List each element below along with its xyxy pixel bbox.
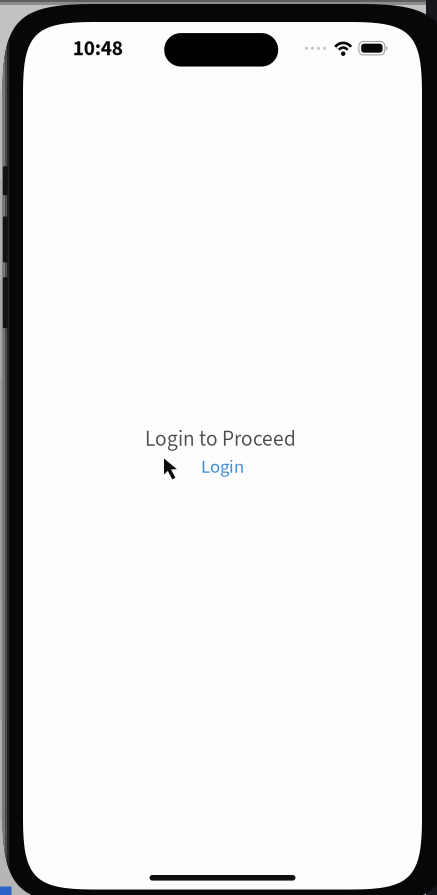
staticText: 10:48 xyxy=(73,33,123,64)
staticText: Login to Proceed xyxy=(145,424,296,454)
button[interactable]: Login xyxy=(191,449,254,485)
staticText: Login xyxy=(201,454,244,480)
